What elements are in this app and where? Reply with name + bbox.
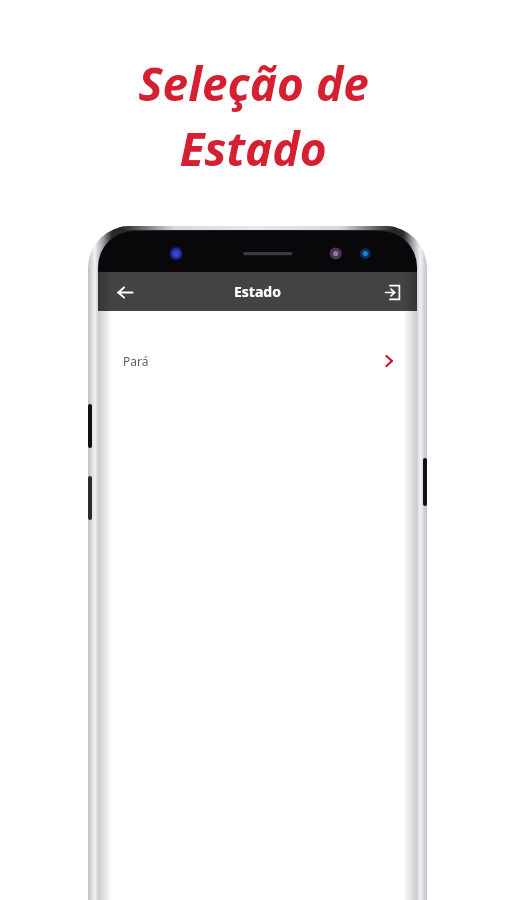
button[interactable]: Back: [108, 275, 142, 309]
staticText: Seleção de: [138, 52, 369, 115]
staticText: Estado: [179, 117, 327, 180]
staticText: Estado: [234, 282, 281, 301]
button[interactable]: Pará: [98, 341, 417, 381]
button[interactable]: Logout: [377, 277, 407, 307]
staticText: Pará: [123, 353, 149, 369]
